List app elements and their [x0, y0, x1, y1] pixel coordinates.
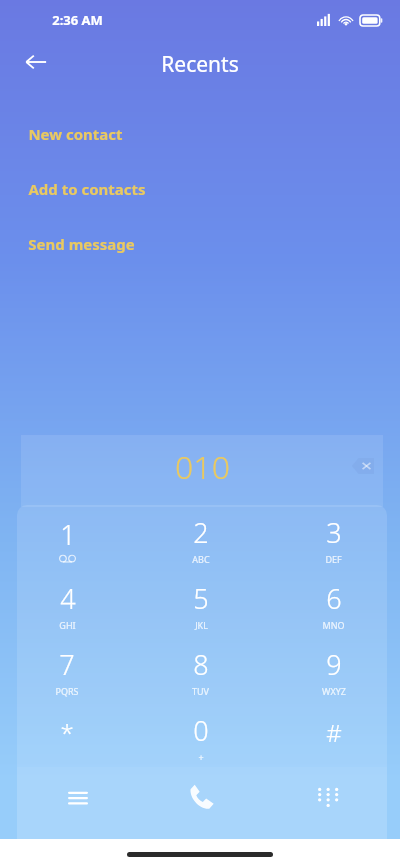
button[interactable]: 0 [134, 704, 267, 770]
staticText: 1 [60, 516, 76, 553]
staticText: 0 [193, 712, 209, 749]
staticText: 6 [326, 580, 342, 617]
button[interactable]: 9 [267, 638, 400, 704]
staticText: JKL [195, 619, 208, 631]
button[interactable]: Back [12, 38, 60, 86]
button[interactable]: 7 [0, 638, 134, 704]
staticText: + [198, 751, 204, 763]
button[interactable]: Backspace [341, 444, 385, 488]
button[interactable]: 6 [267, 572, 400, 638]
button[interactable]: Menu [52, 771, 104, 823]
button[interactable]: 4 [0, 572, 134, 638]
button[interactable]: * [0, 704, 134, 770]
staticText: 010 [175, 445, 230, 489]
staticText: 2 [193, 514, 209, 551]
button[interactable]: New contact [0, 106, 400, 161]
staticText: WXYZ [322, 685, 346, 697]
staticText: TUV [192, 685, 209, 697]
button[interactable]: Add to contacts [0, 161, 400, 216]
staticText: Add to contacts [28, 179, 146, 199]
button[interactable]: Call [174, 769, 230, 825]
button[interactable]: 8 [134, 638, 267, 704]
staticText: ABC [192, 553, 210, 565]
staticText: 4 [60, 580, 76, 617]
staticText: MNO [322, 619, 345, 631]
staticText: 2:36 AM [52, 11, 103, 29]
button[interactable]: 2 [134, 506, 267, 572]
button[interactable]: # [267, 704, 400, 770]
staticText: Recents [161, 50, 239, 79]
staticText: 3 [326, 514, 342, 551]
staticText: # [326, 716, 342, 749]
staticText: 9 [326, 646, 342, 683]
staticText: * [60, 716, 74, 749]
staticText: New contact [28, 124, 123, 144]
button[interactable]: Send message [0, 216, 400, 271]
staticText: PQRS [55, 685, 79, 697]
staticText: 7 [59, 646, 75, 683]
button[interactable]: 3 [267, 506, 400, 572]
staticText: 5 [193, 580, 209, 617]
staticText: GHI [59, 619, 76, 631]
button[interactable]: 5 [134, 572, 267, 638]
staticText: 8 [193, 646, 209, 683]
button[interactable]: Dialpad [300, 771, 352, 823]
staticText: DEF [325, 553, 342, 565]
button[interactable]: 1 [0, 506, 134, 572]
staticText: Send message [28, 234, 135, 254]
